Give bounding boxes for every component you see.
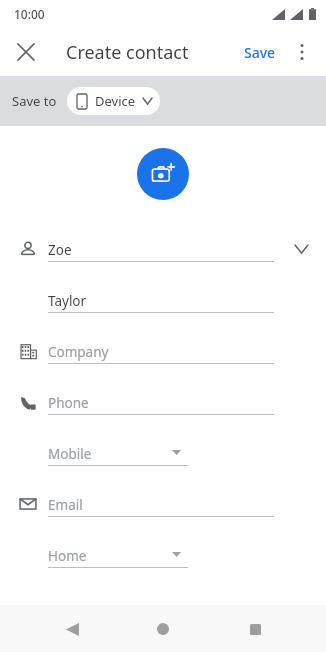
button[interactable]: Email (0, 485, 326, 536)
button[interactable]: Back (52, 609, 92, 649)
button[interactable]: Home (0, 536, 326, 587)
staticText: Zoe (48, 241, 72, 259)
button[interactable]: Device (67, 87, 160, 115)
button[interactable]: Company (0, 332, 326, 383)
staticText: Save to (12, 92, 57, 110)
staticText: Company (48, 343, 109, 361)
button[interactable]: Phone (0, 383, 326, 434)
button[interactable]: Taylor (0, 281, 326, 332)
staticText: Mobile (48, 445, 92, 463)
button[interactable]: Save (238, 37, 282, 68)
button[interactable]: Close (6, 32, 46, 72)
button[interactable]: Expand name fields (288, 236, 314, 262)
staticText: Phone (48, 394, 89, 412)
staticText: Home (48, 547, 87, 565)
button[interactable]: Recents (235, 609, 275, 649)
staticText: Create contact (66, 40, 189, 65)
staticText: Taylor (48, 292, 87, 310)
button[interactable]: More options (284, 34, 320, 70)
staticText: Save (244, 43, 276, 62)
staticText: Email (48, 496, 83, 514)
button[interactable]: Add photo (137, 148, 189, 200)
staticText: 10:00 (14, 6, 45, 22)
button[interactable]: Mobile (0, 434, 326, 485)
button[interactable]: Zoe (0, 230, 326, 281)
button[interactable]: Home (143, 609, 183, 649)
staticText: Device (95, 92, 136, 110)
